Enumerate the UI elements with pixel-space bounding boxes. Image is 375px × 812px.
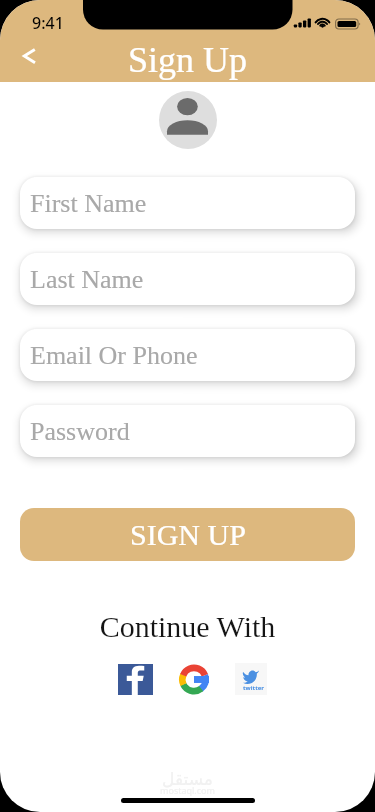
button[interactable]: Back (8, 38, 50, 74)
button[interactable]: SIGN UP (20, 508, 355, 561)
button[interactable]: Password (20, 405, 355, 457)
button[interactable]: Email Or Phone (20, 329, 355, 381)
staticText: Email Or Phone (30, 341, 198, 370)
staticText: Last Name (30, 265, 144, 294)
button[interactable]: First Name (20, 177, 355, 229)
staticText: Continue With (0, 610, 375, 643)
button[interactable]: Continue with Google (179, 664, 209, 694)
button[interactable]: Profile picture (159, 91, 217, 149)
staticText: SIGN UP (130, 518, 246, 551)
button[interactable]: Continue with Twitter (235, 663, 267, 695)
staticText: First Name (30, 189, 147, 218)
button[interactable]: Continue with Facebook (118, 664, 153, 695)
staticText: مستقل (162, 769, 213, 789)
staticText: mostaql.com (160, 784, 215, 796)
button[interactable]: Last Name (20, 253, 355, 305)
staticText: 9:41 (32, 12, 64, 34)
staticText: Sign Up (128, 40, 248, 80)
staticText: twitter (243, 684, 265, 692)
staticText: Password (30, 417, 130, 446)
